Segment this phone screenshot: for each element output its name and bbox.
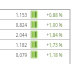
button[interactable]: Rising trend: [30, 50, 38, 59]
button[interactable]: Rising trend: [30, 20, 38, 29]
staticText: 0,824: [15, 22, 27, 28]
staticText: +1,84 %: [46, 32, 63, 38]
button[interactable]: 2.044: [0, 30, 70, 39]
button[interactable]: Rising trend: [30, 30, 38, 39]
button[interactable]: 1.153: [0, 10, 70, 19]
staticText: 2.044: [15, 32, 27, 38]
button[interactable]: 0,824: [0, 20, 70, 29]
button[interactable]: 0,079: [0, 50, 70, 59]
staticText: +0,88 %: [46, 12, 63, 18]
staticText: 0,079: [15, 52, 27, 58]
staticText: +1,18 %: [46, 52, 63, 58]
staticText: +1,73 %: [46, 42, 63, 48]
button[interactable]: 1.182: [0, 40, 70, 49]
staticText: 1.153: [15, 12, 27, 18]
button[interactable]: Rising trend: [30, 10, 38, 19]
staticText: 1.182: [15, 42, 27, 48]
staticText: +1,00 %: [46, 22, 63, 28]
button[interactable]: Rising trend: [30, 40, 38, 49]
